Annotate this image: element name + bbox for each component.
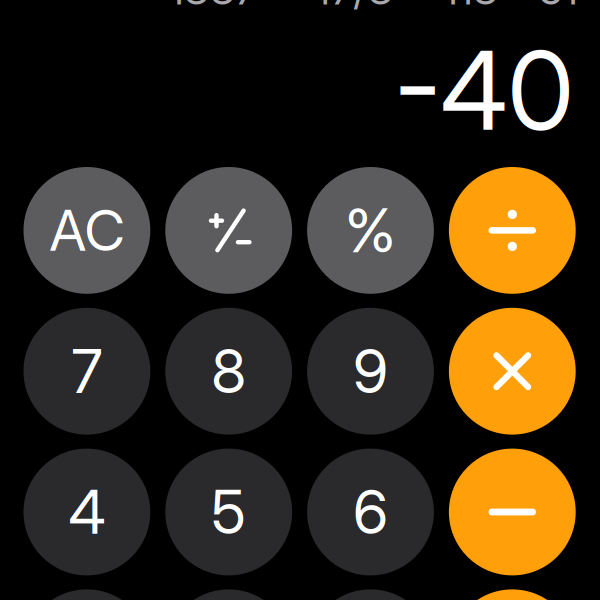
button[interactable]: 1 <box>23 589 150 600</box>
button[interactable]: 3 <box>307 589 434 600</box>
staticText: % <box>345 194 396 267</box>
button[interactable]: Plus minus <box>165 167 292 294</box>
staticText: 9 <box>353 335 388 407</box>
button[interactable]: Add <box>449 589 576 600</box>
button[interactable]: Subtract <box>449 449 576 575</box>
staticText: -40 <box>394 25 573 156</box>
staticText: 1337 + 47/3 + 113 - 51 <box>168 0 577 15</box>
button[interactable]: % <box>307 167 434 294</box>
staticText: 4 <box>68 476 105 548</box>
button[interactable]: 9 <box>307 308 434 435</box>
button[interactable]: 6 <box>307 449 434 575</box>
button[interactable]: 2 <box>165 589 292 600</box>
button[interactable]: Multiply <box>449 308 576 435</box>
staticText: AC <box>49 196 124 264</box>
button[interactable]: 4 <box>23 449 150 575</box>
button[interactable]: 5 <box>165 449 292 575</box>
staticText: 8 <box>211 335 246 407</box>
button[interactable]: 8 <box>165 308 292 435</box>
staticText: 7 <box>71 335 102 407</box>
staticText: 5 <box>211 476 246 548</box>
button[interactable]: Divide <box>449 167 576 294</box>
staticText: 6 <box>353 476 388 548</box>
button[interactable]: 7 <box>23 308 150 435</box>
button[interactable]: AC <box>23 167 150 294</box>
